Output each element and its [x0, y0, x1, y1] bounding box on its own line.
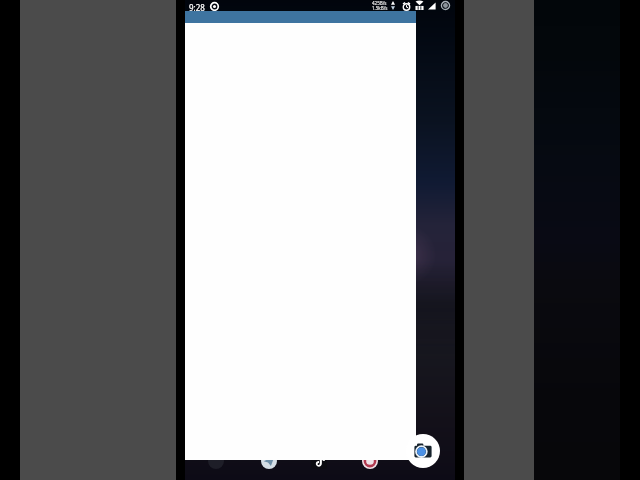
staticText: 1.5kB/s: [372, 5, 388, 11]
button[interactable]: Telegram: [261, 453, 277, 469]
staticText: 9:28: [189, 2, 205, 13]
button[interactable]: Phone: [208, 453, 224, 469]
staticText: 425B/s: [372, 0, 387, 6]
button[interactable]: Opera browser: [362, 453, 378, 469]
button[interactable]: Camera: [406, 434, 440, 468]
button[interactable]: TikTok: [311, 453, 327, 469]
